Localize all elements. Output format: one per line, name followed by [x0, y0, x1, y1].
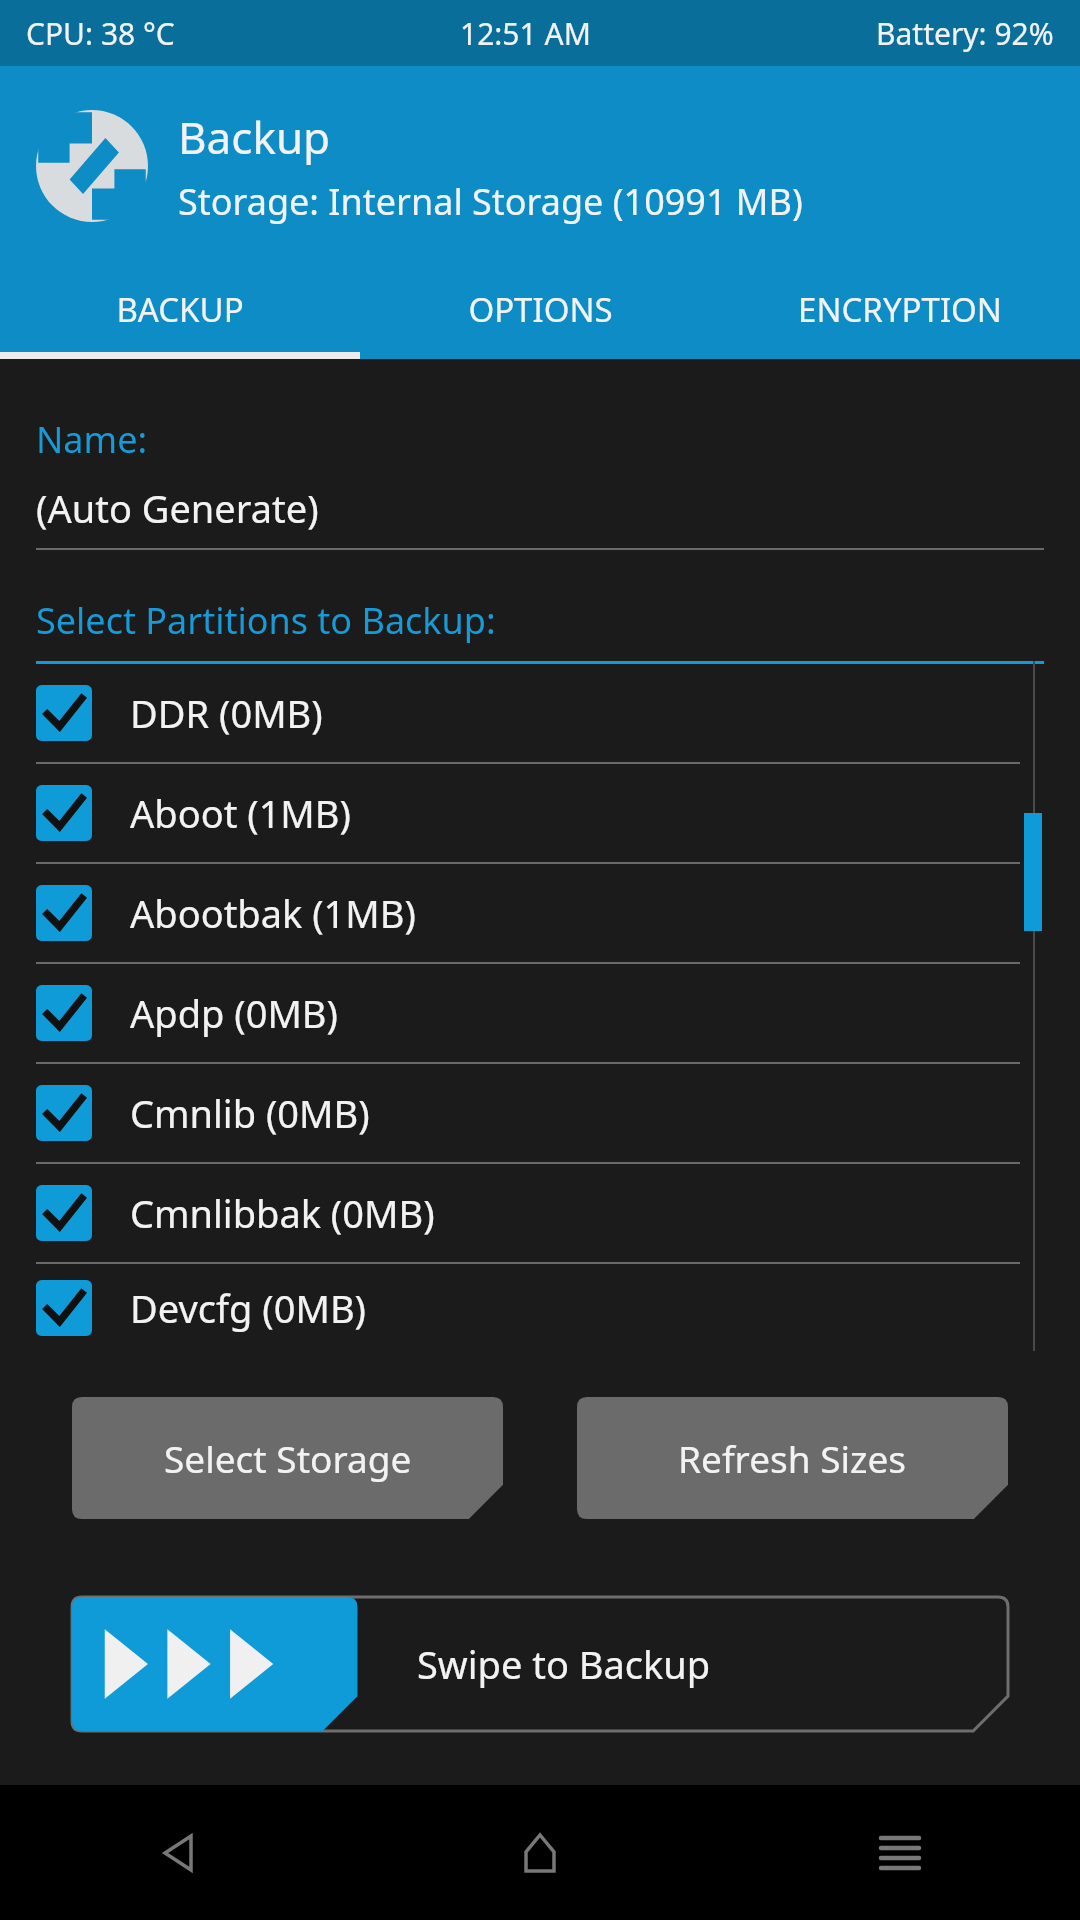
staticText: Name:	[36, 415, 148, 464]
button[interactable]: OPTIONS	[360, 266, 720, 352]
staticText: Cmnlibbak (0MB)	[130, 1187, 435, 1239]
staticText: BACKUP	[116, 287, 244, 332]
button[interactable]: (Auto Generate)	[36, 482, 319, 534]
button[interactable]: Cmnlibbak (0MB)	[0, 1164, 1080, 1262]
staticText: Select Partitions to Backup:	[36, 596, 496, 645]
button[interactable]: Apdp (0MB)	[0, 964, 1080, 1062]
button[interactable]: ENCRYPTION	[720, 266, 1080, 352]
button[interactable]: Swipe to Backup	[72, 1597, 1008, 1731]
staticText: OPTIONS	[468, 287, 613, 332]
staticText: Refresh Sizes	[678, 1433, 907, 1483]
button[interactable]: Abootbak (1MB)	[0, 864, 1080, 962]
staticText: Swipe to Backup	[417, 1638, 711, 1690]
button[interactable]: BACKUP	[0, 266, 360, 352]
staticText: Battery: 92%	[876, 13, 1054, 54]
button[interactable]: Back	[0, 1785, 360, 1920]
staticText: 12:51 AM	[460, 13, 591, 54]
staticText: ENCRYPTION	[798, 287, 1002, 332]
button[interactable]: Devcfg (0MB)	[0, 1264, 1080, 1351]
button[interactable]: DDR (0MB)	[0, 664, 1080, 762]
staticText: Backup	[178, 107, 331, 167]
staticText: Devcfg (0MB)	[130, 1282, 366, 1334]
staticText: Storage: Internal Storage (10991 MB)	[178, 177, 803, 226]
staticText: Cmnlib (0MB)	[130, 1087, 370, 1139]
button[interactable]: Cmnlib (0MB)	[0, 1064, 1080, 1162]
staticText: CPU: 38 °C	[26, 13, 175, 54]
staticText: Abootbak (1MB)	[130, 887, 416, 939]
button[interactable]: Refresh Sizes	[577, 1397, 1008, 1519]
button[interactable]: Menu	[720, 1785, 1080, 1920]
button[interactable]: Home	[360, 1785, 720, 1920]
staticText: DDR (0MB)	[130, 687, 323, 739]
button[interactable]: Aboot (1MB)	[0, 764, 1080, 862]
staticText: Select Storage	[164, 1433, 412, 1483]
staticText: Apdp (0MB)	[130, 987, 338, 1039]
button[interactable]: Select Storage	[72, 1397, 503, 1519]
staticText: Aboot (1MB)	[130, 787, 351, 839]
